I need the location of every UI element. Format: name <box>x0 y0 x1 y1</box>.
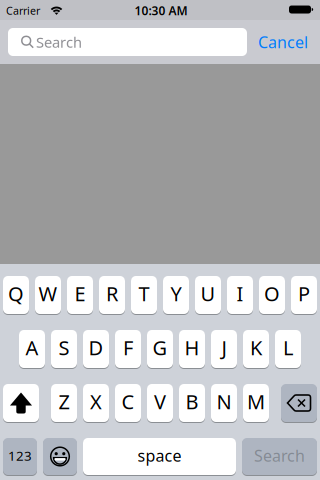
staticText: F <box>123 334 133 361</box>
staticText: Y <box>170 280 181 307</box>
staticText: G <box>152 334 167 361</box>
button[interactable]: E <box>67 276 93 314</box>
staticText: M <box>247 388 265 415</box>
staticText: space <box>137 445 181 466</box>
button[interactable]: V <box>147 384 173 422</box>
staticText: R <box>106 280 118 307</box>
button[interactable]: Q <box>3 276 29 314</box>
button[interactable]: Shift <box>3 384 39 422</box>
button[interactable]: Search <box>242 438 317 475</box>
staticText: E <box>74 280 85 307</box>
staticText: B <box>185 388 198 415</box>
button[interactable]: L <box>275 330 301 368</box>
staticText: 10:30 AM <box>134 2 187 18</box>
staticText: L <box>283 334 293 361</box>
button[interactable]: D <box>83 330 109 368</box>
staticText: V <box>154 388 166 415</box>
staticText: W <box>38 280 57 307</box>
button[interactable]: X <box>83 384 109 422</box>
staticText: X <box>90 388 102 415</box>
staticText: Cancel <box>258 31 308 53</box>
staticText: Z <box>58 388 69 415</box>
staticText: J <box>221 334 226 361</box>
button[interactable]: space <box>83 438 236 475</box>
staticText: Carrier <box>6 3 40 18</box>
button[interactable]: Numbers <box>3 438 37 475</box>
staticText: H <box>184 334 199 361</box>
button[interactable]: J <box>211 330 237 368</box>
staticText: Search <box>254 445 305 466</box>
button[interactable]: N <box>211 384 237 422</box>
button[interactable]: Cancel <box>245 20 320 64</box>
staticText: P <box>298 280 310 307</box>
button[interactable]: W <box>35 276 61 314</box>
button[interactable]: P <box>291 276 317 314</box>
staticText: D <box>88 334 103 361</box>
staticText: Search <box>36 32 82 52</box>
button[interactable]: Emoji <box>43 438 77 475</box>
staticText: O <box>264 280 280 307</box>
staticText: C <box>121 388 134 415</box>
staticText: S <box>58 334 69 361</box>
staticText: 123 <box>8 447 32 464</box>
button[interactable]: Z <box>51 384 77 422</box>
button[interactable]: O <box>259 276 285 314</box>
button[interactable]: I <box>227 276 253 314</box>
button[interactable]: G <box>147 330 173 368</box>
staticText: K <box>250 334 262 361</box>
button[interactable]: C <box>115 384 141 422</box>
staticText: U <box>200 280 215 307</box>
button[interactable]: Y <box>163 276 189 314</box>
button[interactable]: F <box>115 330 141 368</box>
staticText: A <box>25 334 38 361</box>
staticText: Q <box>8 280 24 307</box>
button[interactable]: M <box>243 384 269 422</box>
staticText: I <box>236 280 243 307</box>
button[interactable]: S <box>51 330 77 368</box>
button[interactable]: T <box>131 276 157 314</box>
staticText: T <box>138 280 149 307</box>
button[interactable]: R <box>99 276 125 314</box>
button[interactable]: B <box>179 384 205 422</box>
staticText: N <box>216 388 231 415</box>
button[interactable]: A <box>19 330 45 368</box>
button[interactable]: Search <box>8 28 247 56</box>
button[interactable]: K <box>243 330 269 368</box>
button[interactable]: U <box>195 276 221 314</box>
button[interactable]: H <box>179 330 205 368</box>
button[interactable]: Delete <box>281 384 317 422</box>
